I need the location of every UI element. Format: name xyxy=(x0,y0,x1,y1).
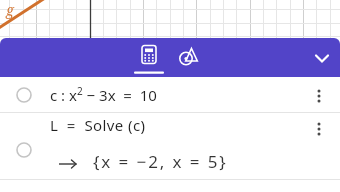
staticText: L = Solve (c) xyxy=(50,115,146,135)
button[interactable]: c : x2 − 3x = 10 xyxy=(0,77,340,112)
button[interactable] xyxy=(16,87,32,103)
button[interactable] xyxy=(310,87,328,105)
staticText: {x = −2, x = 5} xyxy=(93,150,228,173)
staticText: g xyxy=(6,0,14,19)
staticText: c : x2 − 3x = 10 xyxy=(50,84,157,105)
button[interactable] xyxy=(16,142,32,158)
button[interactable]: L = Solve (c) xyxy=(0,113,340,179)
button[interactable] xyxy=(176,44,202,70)
button[interactable] xyxy=(135,42,163,75)
button[interactable] xyxy=(310,46,334,70)
button[interactable] xyxy=(310,120,328,138)
